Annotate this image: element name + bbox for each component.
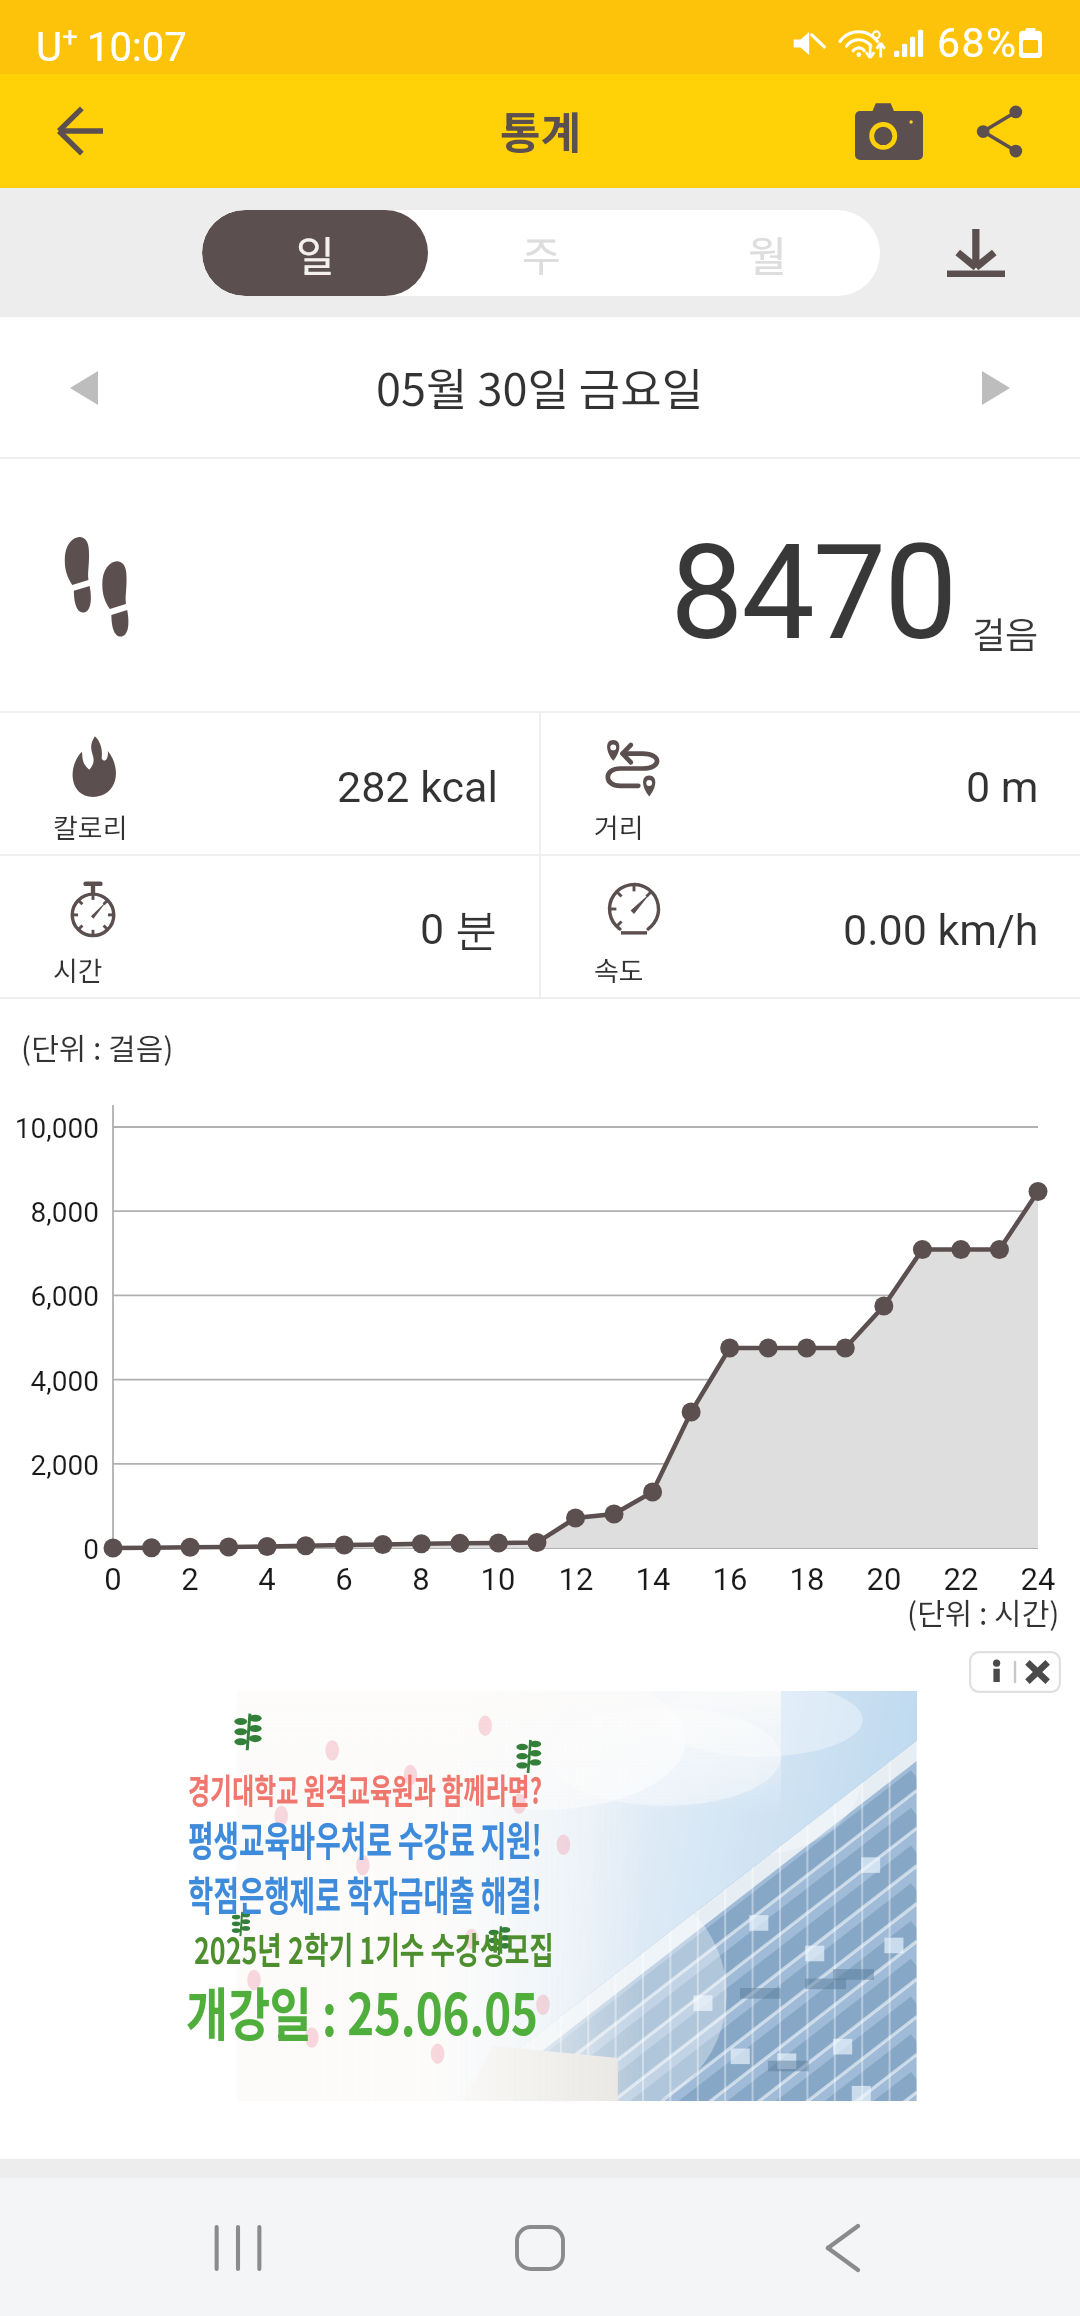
staticText: 속도 bbox=[594, 950, 644, 989]
button[interactable]: Share bbox=[950, 81, 1050, 181]
button[interactable]: Back bbox=[782, 2178, 902, 2316]
button[interactable]: Advertisement bbox=[237, 1691, 917, 2101]
button[interactable]: 시간 bbox=[0, 856, 539, 997]
staticText: (단위 : 시간) bbox=[907, 1590, 1060, 1633]
staticText: 24 bbox=[998, 1561, 1078, 1597]
button[interactable]: 일 bbox=[202, 210, 428, 296]
staticText: 0 분 bbox=[420, 903, 498, 957]
button[interactable]: 월 bbox=[654, 210, 880, 296]
staticText: 0.00 km/h bbox=[843, 905, 1039, 955]
staticText: 시간 bbox=[53, 950, 103, 989]
staticText: 8 bbox=[381, 1561, 461, 1597]
button[interactable]: Download bbox=[928, 205, 1024, 301]
button[interactable]: Back bbox=[32, 83, 128, 179]
button[interactable]: Recent apps bbox=[178, 2178, 298, 2316]
staticText: 14 bbox=[613, 1561, 693, 1597]
staticText: U bbox=[36, 24, 62, 71]
button[interactable]: 거리 bbox=[541, 713, 1080, 854]
staticText: 경기대학교 원격교육원과 함께라면? bbox=[188, 1763, 542, 1814]
staticText: 2 bbox=[150, 1561, 230, 1597]
staticText: 10,000 bbox=[0, 1112, 99, 1145]
staticText: 8470 bbox=[670, 516, 956, 670]
staticText: 4 bbox=[227, 1561, 307, 1597]
staticText: 0 bbox=[0, 1533, 99, 1566]
staticText: 18 bbox=[767, 1561, 847, 1597]
staticText: 월 bbox=[748, 223, 787, 284]
staticText: 2,000 bbox=[0, 1449, 99, 1482]
staticText: 통계 bbox=[500, 98, 581, 162]
staticText: 2025년 2학기 1기수 수강생모집 bbox=[194, 1921, 554, 1975]
staticText: 4,000 bbox=[0, 1365, 99, 1398]
staticText: 0 m bbox=[966, 762, 1039, 812]
staticText: 6 bbox=[304, 1561, 384, 1597]
staticText: 16 bbox=[690, 1561, 770, 1597]
staticText: 10:07 bbox=[87, 24, 187, 71]
button[interactable]: 주 bbox=[428, 210, 654, 296]
staticText: 282 kcal bbox=[337, 762, 498, 812]
staticText: 개강일 : 25.06.05 bbox=[186, 1969, 538, 2053]
staticText: 평생교육바우처로 수강료 지원! bbox=[188, 1808, 542, 1867]
staticText: 거리 bbox=[594, 807, 644, 846]
staticText: 05월 30일 금요일 bbox=[376, 354, 704, 419]
staticText: (단위 : 걸음) bbox=[21, 1025, 174, 1068]
button[interactable]: Ad options bbox=[969, 1651, 1061, 1693]
staticText: 걸음 bbox=[972, 606, 1039, 658]
button[interactable]: 칼로리 bbox=[0, 713, 539, 854]
staticText: 6,000 bbox=[0, 1280, 99, 1313]
staticText: 20 bbox=[844, 1561, 924, 1597]
staticText: 0 bbox=[73, 1561, 153, 1597]
button[interactable]: Camera bbox=[834, 76, 944, 186]
staticText: 22 bbox=[921, 1561, 1001, 1597]
button[interactable]: Home bbox=[480, 2178, 600, 2316]
staticText: + bbox=[62, 20, 78, 53]
button[interactable]: Previous day bbox=[44, 348, 124, 428]
staticText: 학점은행제로 학자금대출 해결! bbox=[188, 1863, 542, 1922]
staticText: 주 bbox=[522, 223, 561, 284]
staticText: 68% bbox=[937, 19, 1018, 67]
staticText: 8,000 bbox=[0, 1196, 99, 1229]
staticText: 일 bbox=[296, 223, 335, 284]
button[interactable]: Next day bbox=[956, 348, 1036, 428]
staticText: 10 bbox=[458, 1561, 538, 1597]
staticText: 칼로리 bbox=[53, 807, 128, 846]
button[interactable]: 속도 bbox=[541, 856, 1080, 997]
staticText: 12 bbox=[536, 1561, 616, 1597]
